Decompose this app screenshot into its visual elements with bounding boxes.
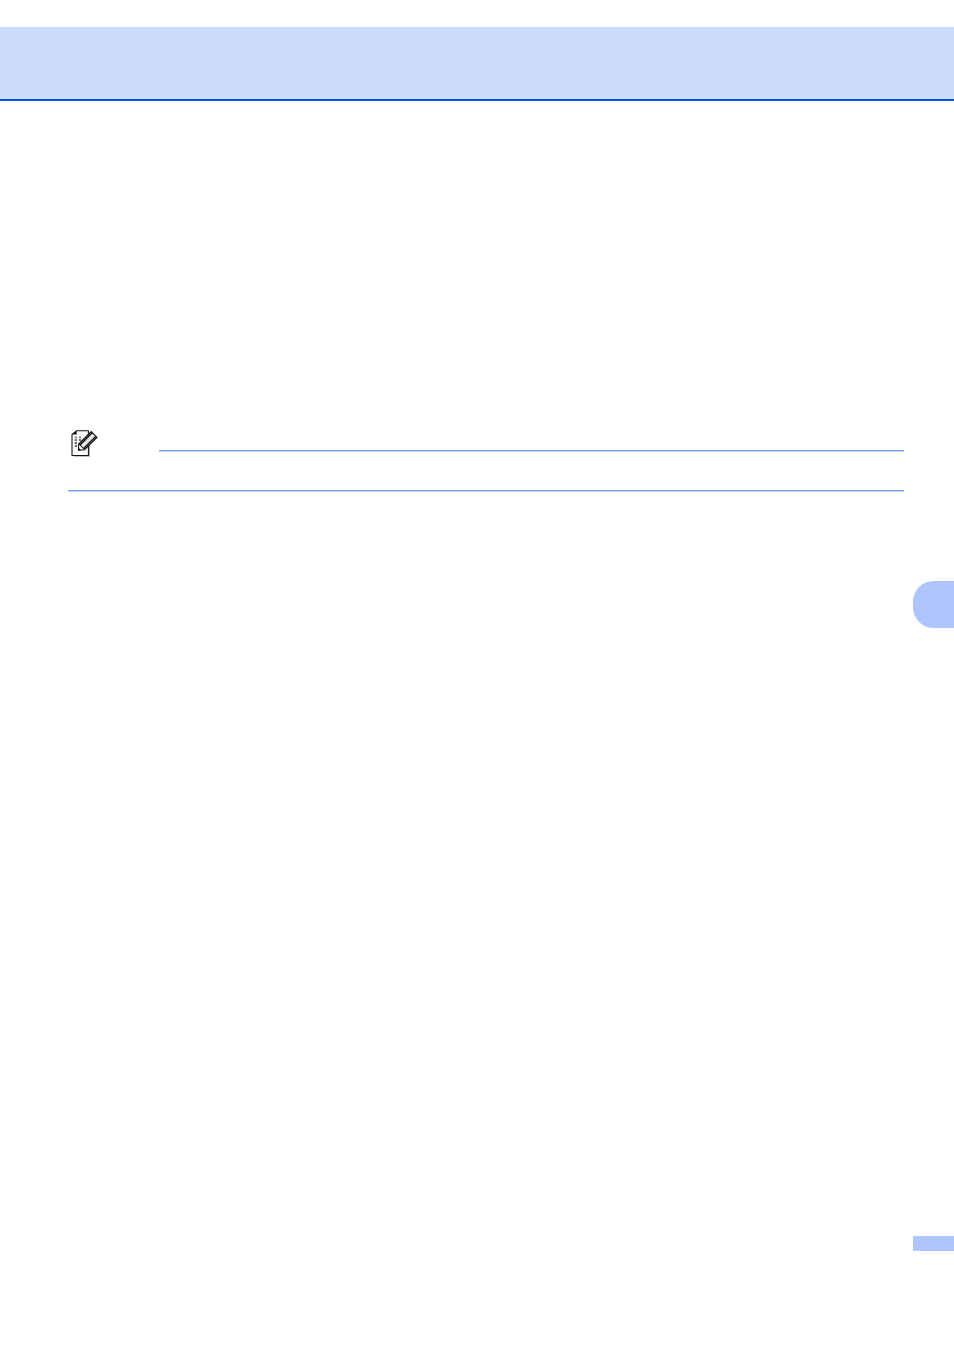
button[interactable]: Chapter tab <box>913 581 954 628</box>
button[interactable]: Note <box>71 430 98 457</box>
